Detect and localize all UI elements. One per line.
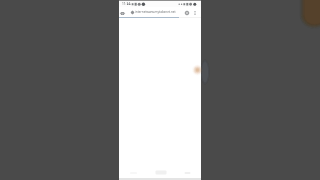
button[interactable]: internetwww.mytabsnet.net xyxy=(131,7,181,17)
button[interactable]: Incognito xyxy=(119,9,126,16)
button[interactable]: Switch tabs xyxy=(183,9,190,16)
button[interactable]: More options xyxy=(192,9,198,16)
staticText: internetwww.mytabsnet.net xyxy=(135,10,176,14)
staticText: 11:14 xyxy=(122,2,130,6)
button[interactable]: Home xyxy=(147,168,174,178)
